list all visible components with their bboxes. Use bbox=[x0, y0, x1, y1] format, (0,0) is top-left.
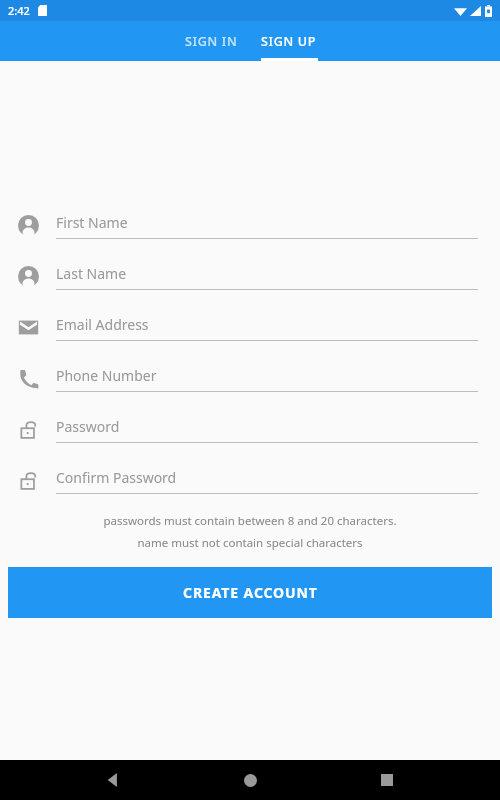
button[interactable]: Email Address bbox=[0, 312, 500, 343]
staticText: First Name bbox=[56, 213, 128, 232]
button[interactable]: CREATE ACCOUNT bbox=[8, 567, 492, 618]
staticText: passwords must contain between 8 and 20 … bbox=[0, 513, 500, 529]
staticText: SIGN UP bbox=[261, 33, 317, 50]
staticText: Phone Number bbox=[56, 366, 157, 385]
button[interactable]: Home bbox=[226, 760, 274, 800]
button[interactable]: Back bbox=[89, 760, 137, 800]
button[interactable]: Confirm Password bbox=[0, 465, 500, 496]
button[interactable]: Last Name bbox=[0, 261, 500, 292]
staticText: SIGN IN bbox=[185, 33, 238, 50]
staticText: Password bbox=[56, 417, 120, 436]
staticText: CREATE ACCOUNT bbox=[183, 583, 318, 602]
button[interactable]: SIGN IN bbox=[172, 21, 250, 61]
button[interactable]: Phone Number bbox=[0, 363, 500, 394]
button[interactable]: Password bbox=[0, 414, 500, 445]
staticText: Email Address bbox=[56, 315, 149, 334]
staticText: name must not contain special characters bbox=[0, 535, 500, 551]
staticText: 2:42 bbox=[8, 3, 30, 18]
button[interactable]: SIGN UP bbox=[250, 21, 328, 61]
button[interactable]: First Name bbox=[0, 210, 500, 241]
staticText: Confirm Password bbox=[56, 468, 177, 487]
staticText: Last Name bbox=[56, 264, 127, 283]
button[interactable]: Recent apps bbox=[363, 760, 411, 800]
